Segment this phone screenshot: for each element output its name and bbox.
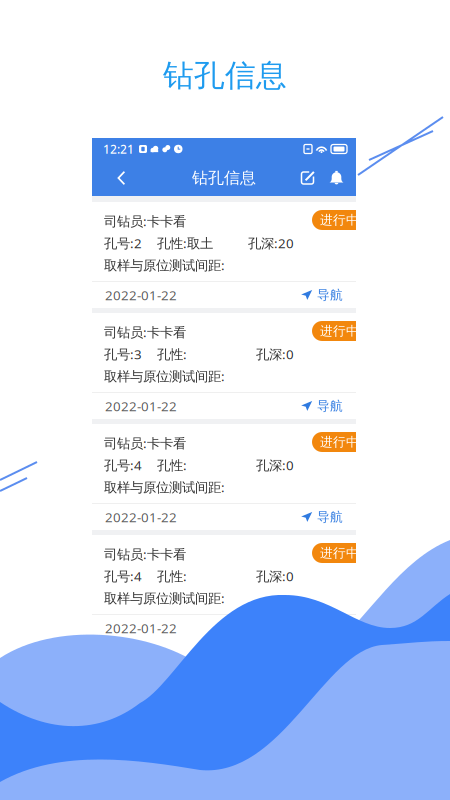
staticText: 取样与原位测试间距: [104,367,225,385]
button[interactable]: 司钻员:卡卡看 [92,202,356,308]
staticText: 12:21 [103,141,134,157]
staticText: 导航 [317,509,343,525]
button[interactable]: Notifications [322,160,351,196]
staticText: 孔深:0 [256,456,294,474]
staticText: 2022-01-22 [105,397,177,415]
button[interactable]: Edit [293,160,322,196]
staticText: 取样与原位测试间距: [104,589,225,607]
staticText: 2022-01-22 [105,508,177,526]
button[interactable]: 司钻员:卡卡看 [92,313,356,419]
staticText: 进行中 [320,434,359,450]
staticText: 司钻员:卡卡看 [104,434,186,452]
staticText: 钻孔信息 [163,56,287,95]
staticText: 进行中 [320,323,359,339]
staticText: 钻孔信息 [192,168,256,188]
staticText: 孔号:4 [104,567,142,585]
staticText: 进行中 [320,545,359,561]
staticText: 孔性: [157,456,187,474]
staticText: 司钻员:卡卡看 [104,323,186,341]
staticText: 孔深:0 [256,567,294,585]
button[interactable]: 司钻员:卡卡看 [92,535,356,641]
staticText: 导航 [317,287,343,303]
staticText: 孔深:0 [256,345,294,363]
staticText: 取样与原位测试间距: [104,478,225,496]
staticText: 孔号:3 [104,345,142,363]
staticText: 2022-01-22 [105,619,177,637]
staticText: 孔号:2 [104,234,142,252]
staticText: 孔性: [157,567,187,585]
staticText: 司钻员:卡卡看 [104,545,186,563]
staticText: 孔号:4 [104,456,142,474]
staticText: 司钻员:卡卡看 [104,212,186,230]
staticText: 导航 [317,398,343,414]
staticText: 2022-01-22 [105,286,177,304]
staticText: 取样与原位测试间距: [104,256,225,274]
button[interactable]: 进行中 [312,432,356,452]
button[interactable]: 进行中 [312,543,356,563]
staticText: 进行中 [320,212,359,228]
staticText: 孔性:取土 [157,234,213,252]
staticText: 孔性: [157,345,187,363]
staticText: 孔深:20 [248,234,294,252]
button[interactable]: Back [92,160,140,196]
button[interactable]: 进行中 [312,210,356,230]
button[interactable]: 司钻员:卡卡看 [92,424,356,530]
button[interactable]: 进行中 [312,321,356,341]
